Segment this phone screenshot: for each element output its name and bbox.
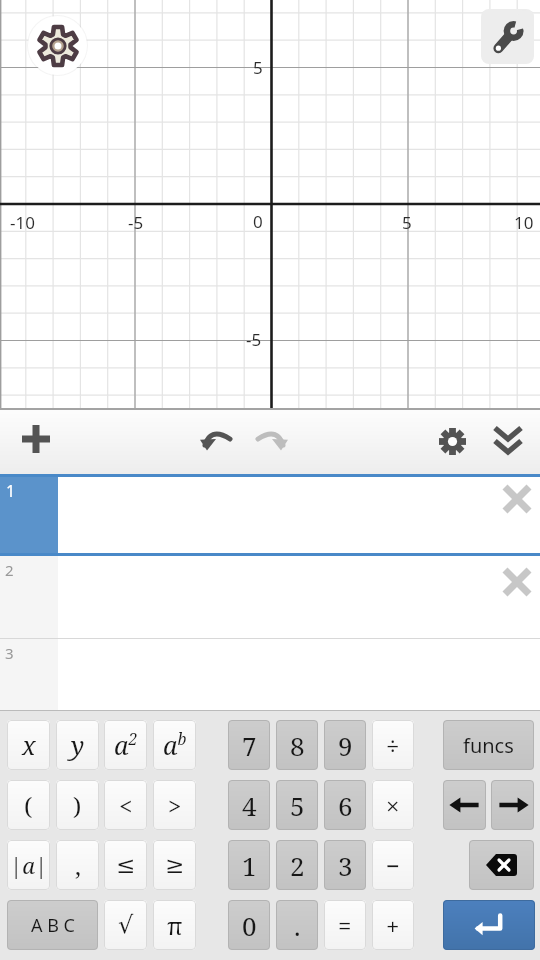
button[interactable]: funcs — [443, 720, 534, 770]
staticText: A B C — [31, 913, 75, 938]
button[interactable] — [195, 417, 239, 461]
button[interactable]: 3 — [324, 840, 366, 890]
button[interactable]: a2 — [104, 720, 147, 770]
button[interactable]: , — [56, 840, 99, 890]
button[interactable]: 4 — [228, 780, 270, 830]
staticText: ≥ — [165, 852, 185, 879]
button[interactable]: x — [7, 720, 50, 770]
button[interactable]: 3 — [0, 639, 540, 710]
button[interactable]: = — [324, 900, 366, 950]
staticText: π — [167, 909, 183, 942]
button[interactable] — [430, 419, 474, 463]
staticText: > — [168, 789, 182, 822]
button[interactable] — [486, 417, 530, 461]
button[interactable]: 7 — [228, 720, 270, 770]
staticText: 5 — [253, 56, 263, 79]
button[interactable]: 9 — [324, 720, 366, 770]
staticText: 3 — [338, 848, 353, 883]
staticText: 2 — [5, 560, 14, 580]
button[interactable]: y — [56, 720, 99, 770]
staticText: x — [22, 728, 36, 762]
button[interactable]: < — [104, 780, 147, 830]
button[interactable]: 8 — [276, 720, 318, 770]
button[interactable]: π — [153, 900, 196, 950]
staticText: ab — [163, 728, 187, 762]
staticText: − — [386, 849, 400, 882]
staticText: ( — [24, 789, 33, 822]
button[interactable] — [481, 9, 534, 64]
staticText: -10 — [10, 211, 35, 234]
button[interactable]: ÷ — [372, 720, 414, 770]
staticText: 4 — [242, 788, 257, 823]
button[interactable]: |a| — [7, 840, 50, 890]
button[interactable]: ( — [7, 780, 50, 830]
staticText: funcs — [463, 732, 514, 759]
staticText: ≤ — [116, 852, 136, 879]
button[interactable] — [14, 417, 58, 461]
staticText: 10 — [514, 211, 534, 234]
staticText: 5 — [290, 788, 305, 823]
staticText: |a| — [10, 850, 48, 880]
staticText: 0 — [242, 908, 257, 943]
button[interactable]: . — [276, 900, 318, 950]
staticText: 0 — [253, 210, 263, 233]
button[interactable] — [469, 840, 534, 890]
staticText: 1 — [6, 480, 16, 502]
button[interactable]: ab — [153, 720, 196, 770]
button[interactable]: ≥ — [153, 840, 196, 890]
button[interactable]: 2 — [276, 840, 318, 890]
staticText: √ — [118, 911, 134, 939]
staticText: 1 — [242, 848, 257, 883]
button[interactable]: 5 — [276, 780, 318, 830]
button[interactable]: − — [372, 840, 414, 890]
button[interactable]: ) — [56, 780, 99, 830]
button[interactable]: A B C — [7, 900, 98, 950]
staticText: 9 — [338, 728, 353, 763]
button[interactable]: > — [153, 780, 196, 830]
staticText: a2 — [114, 728, 138, 762]
staticText: 3 — [5, 643, 14, 663]
button[interactable]: √ — [104, 900, 147, 950]
button[interactable]: + — [372, 900, 414, 950]
staticText: ÷ — [386, 729, 400, 762]
button[interactable] — [504, 486, 530, 512]
staticText: ) — [73, 789, 82, 822]
staticText: 2 — [290, 848, 305, 883]
button[interactable]: 6 — [324, 780, 366, 830]
staticText: < — [119, 789, 133, 822]
button[interactable] — [504, 569, 530, 595]
button[interactable]: × — [372, 780, 414, 830]
button[interactable] — [443, 900, 535, 950]
staticText: 8 — [290, 728, 305, 763]
button[interactable] — [491, 780, 534, 830]
button[interactable]: 1 — [228, 840, 270, 890]
staticText: 7 — [242, 728, 257, 763]
button[interactable]: 0 — [228, 900, 270, 950]
button[interactable]: ≤ — [104, 840, 147, 890]
staticText: = — [338, 909, 352, 942]
staticText: + — [386, 909, 400, 942]
staticText: , — [75, 849, 81, 882]
button[interactable]: 1 — [0, 477, 540, 553]
staticText: 6 — [338, 788, 353, 823]
staticText: 5 — [402, 211, 412, 234]
button[interactable] — [443, 780, 486, 830]
staticText: . — [294, 908, 301, 943]
staticText: -5 — [246, 328, 262, 351]
button[interactable]: 2 — [0, 556, 540, 638]
staticText: -5 — [128, 211, 144, 234]
button[interactable] — [249, 417, 293, 461]
staticText: y — [71, 728, 85, 762]
button[interactable] — [28, 16, 87, 75]
staticText: × — [386, 789, 400, 822]
